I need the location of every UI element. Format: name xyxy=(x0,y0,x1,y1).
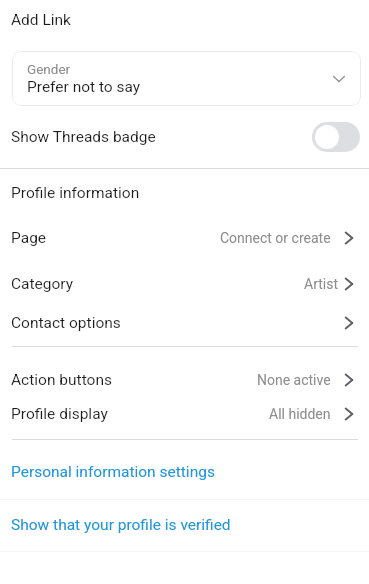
staticText: Connect or create xyxy=(220,230,331,246)
button[interactable]: Category xyxy=(0,261,369,306)
staticText: Add Link xyxy=(11,11,71,29)
staticText: Artist xyxy=(304,276,339,292)
staticText: Profile display xyxy=(11,405,108,423)
staticText: Action buttons xyxy=(11,371,112,389)
staticText: Category xyxy=(11,275,74,293)
staticText: None active xyxy=(257,372,331,388)
staticText: Show that your profile is verified xyxy=(11,516,231,534)
staticText: Contact options xyxy=(11,314,121,332)
staticText: Prefer not to say xyxy=(27,78,141,96)
staticText: Profile information xyxy=(11,184,140,202)
button[interactable]: Show Threads badge xyxy=(0,106,369,168)
button[interactable]: Personal information settings xyxy=(0,449,369,495)
staticText: All hidden xyxy=(269,406,331,422)
staticText: Page xyxy=(11,229,47,247)
button[interactable]: Contact options xyxy=(0,303,369,343)
other: Show Threads badge toggle xyxy=(312,122,360,152)
button[interactable]: Page xyxy=(0,215,369,260)
button[interactable]: Add Link xyxy=(0,0,369,39)
other: Expand gender options xyxy=(331,71,347,87)
staticText: Show Threads badge xyxy=(11,128,156,146)
button[interactable]: Gender xyxy=(12,51,361,106)
staticText: Gender xyxy=(27,61,71,77)
button[interactable]: Profile display xyxy=(0,397,369,431)
button[interactable]: Show that your profile is verified xyxy=(0,502,369,547)
button[interactable]: Action buttons xyxy=(0,361,369,399)
staticText: Personal information settings xyxy=(11,463,215,481)
